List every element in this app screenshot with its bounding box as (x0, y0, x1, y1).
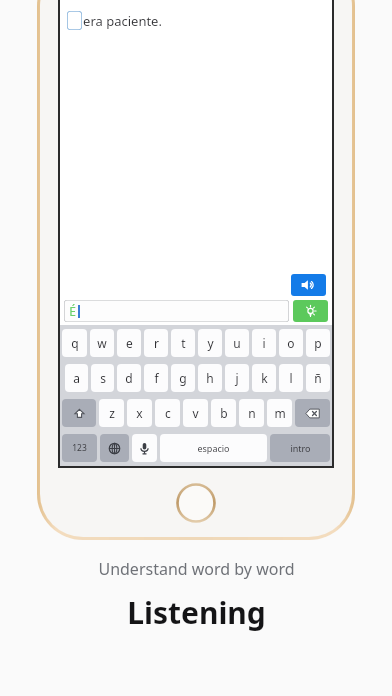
staticText: intro (290, 442, 311, 454)
button[interactable]: y (198, 329, 222, 357)
staticText: y (207, 335, 214, 351)
staticText: era paciente. (83, 12, 162, 30)
staticText: 123 (72, 442, 87, 454)
staticText: p (314, 335, 322, 351)
staticText: espacio (197, 442, 230, 454)
staticText: v (192, 405, 199, 421)
staticText: r (154, 335, 159, 351)
button[interactable]: Hint (293, 300, 328, 322)
button[interactable]: d (117, 364, 141, 392)
button[interactable]: j (225, 364, 249, 392)
button[interactable]: r (144, 329, 168, 357)
button[interactable]: z (99, 399, 124, 427)
button[interactable]: q (62, 329, 87, 357)
button[interactable]: k (252, 364, 276, 392)
staticText: j (235, 370, 239, 386)
button[interactable]: m (267, 399, 292, 427)
staticText: i (262, 335, 266, 351)
staticText: a (73, 370, 80, 386)
button[interactable]: a (65, 364, 88, 392)
staticText: x (136, 405, 143, 421)
button[interactable]: s (91, 364, 114, 392)
button[interactable]: Dictate (132, 434, 157, 462)
button[interactable]: u (225, 329, 249, 357)
staticText: n (248, 405, 256, 421)
button[interactable]: Switch keyboard (100, 434, 129, 462)
button[interactable]: x (127, 399, 152, 427)
staticText: z (109, 405, 115, 421)
button[interactable]: ñ (306, 364, 330, 392)
staticText: b (220, 405, 228, 421)
staticText: d (125, 370, 133, 386)
staticText: h (206, 370, 214, 386)
button[interactable]: v (183, 399, 208, 427)
button[interactable]: i (252, 329, 276, 357)
staticText: ñ (314, 370, 322, 386)
button[interactable]: p (306, 329, 330, 357)
button[interactable] (67, 11, 82, 30)
button[interactable]: É (64, 300, 289, 322)
button[interactable]: f (144, 364, 168, 392)
button[interactable]: e (117, 329, 141, 357)
staticText: u (233, 335, 241, 351)
staticText: k (261, 370, 268, 386)
staticText: É (69, 303, 76, 319)
button[interactable]: intro (270, 434, 330, 462)
button[interactable]: h (198, 364, 222, 392)
button[interactable]: c (155, 399, 180, 427)
button[interactable]: n (239, 399, 264, 427)
staticText: e (126, 335, 133, 351)
staticText: q (71, 335, 79, 351)
staticText: g (179, 370, 187, 386)
button[interactable]: g (171, 364, 195, 392)
button[interactable]: w (90, 329, 114, 357)
staticText: w (97, 335, 107, 351)
button[interactable]: Backspace (295, 399, 330, 427)
staticText: Listening (127, 592, 266, 633)
button[interactable]: 123 (62, 434, 97, 462)
button[interactable]: Shift (62, 399, 96, 427)
staticText: Understand word by word (98, 558, 295, 580)
staticText: l (289, 370, 293, 386)
button[interactable]: b (211, 399, 236, 427)
button[interactable]: l (279, 364, 303, 392)
staticText: c (165, 405, 171, 421)
button[interactable]: t (171, 329, 195, 357)
button[interactable]: o (279, 329, 303, 357)
button[interactable]: espacio (160, 434, 267, 462)
staticText: f (154, 370, 159, 386)
staticText: s (100, 370, 106, 386)
staticText: t (181, 335, 186, 351)
button[interactable]: Play audio (291, 274, 326, 296)
staticText: m (274, 405, 286, 421)
staticText: o (287, 335, 295, 351)
